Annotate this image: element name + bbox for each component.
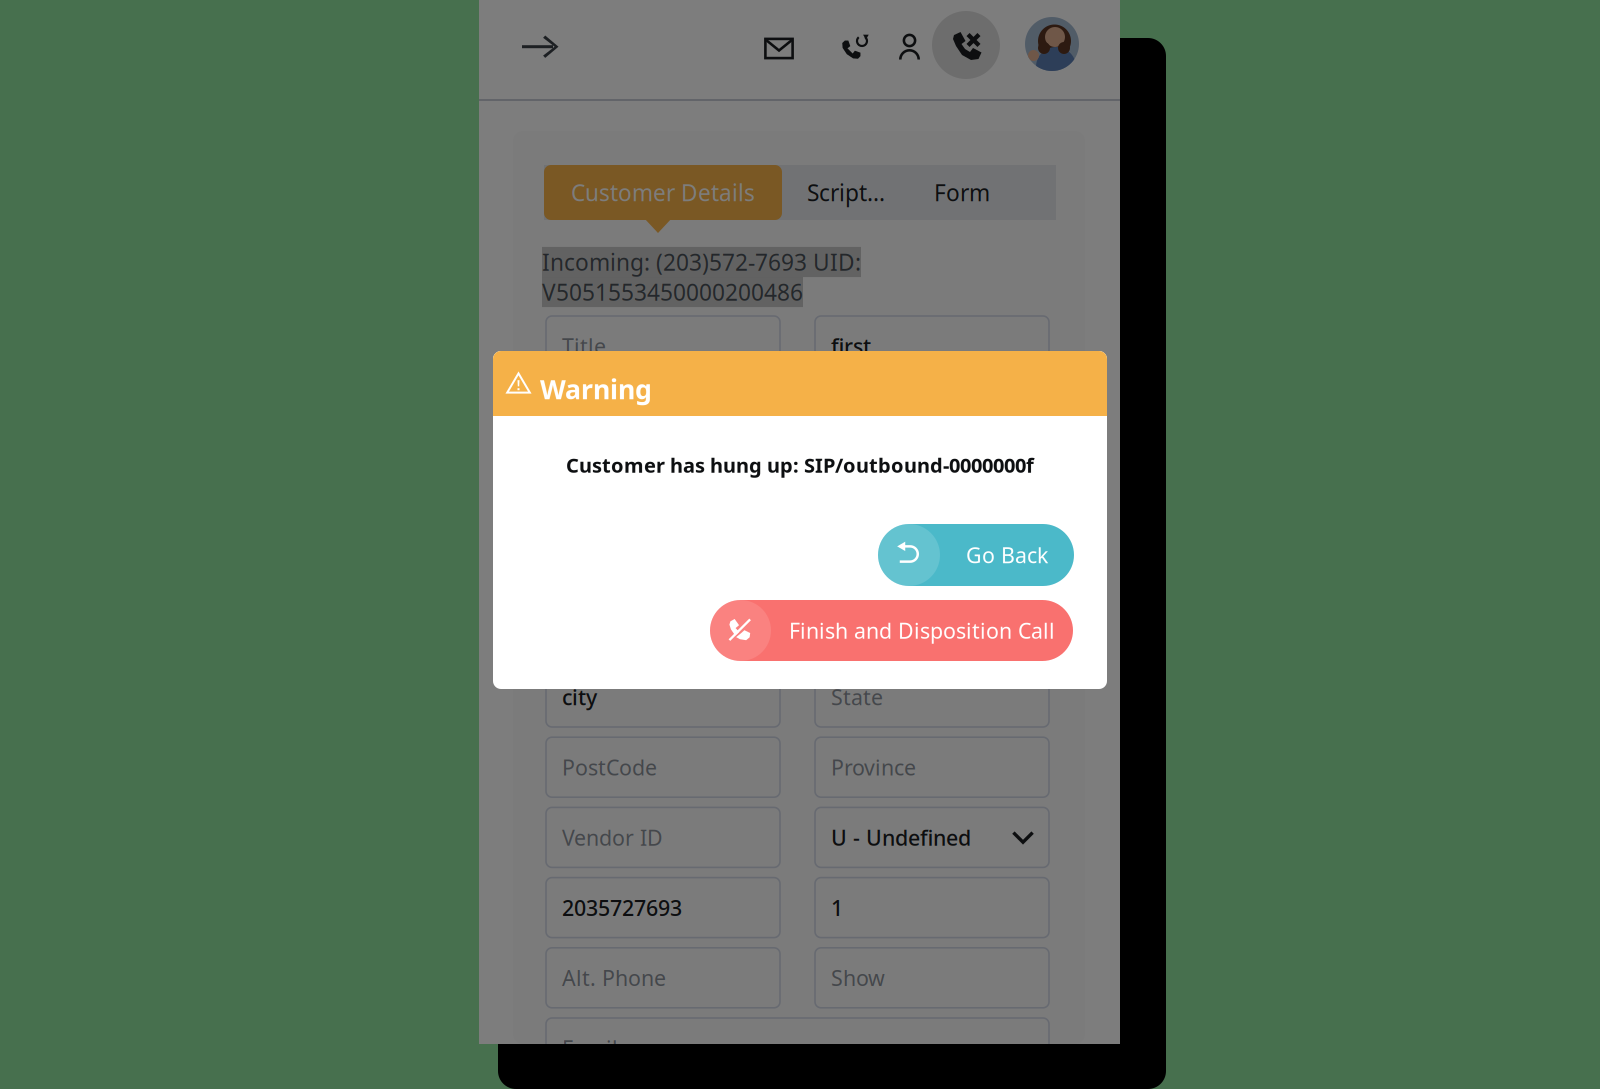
button[interactable]: Customer Details	[544, 165, 782, 220]
staticText: Vendor ID	[562, 823, 663, 851]
staticText: Country	[831, 542, 911, 571]
staticText: Title	[562, 332, 606, 360]
staticText: Incoming: (203)572-7693 UID:	[542, 247, 861, 277]
staticText: Customer Details	[571, 177, 755, 207]
staticText: Address2	[831, 472, 923, 500]
button[interactable]: Contact	[899, 33, 920, 60]
button[interactable]: Profile	[1025, 17, 1079, 71]
staticText: Address1	[562, 472, 654, 500]
staticText: Finish and Disposition Call	[789, 616, 1055, 645]
staticText: Warning	[540, 371, 652, 407]
staticText: 1	[831, 893, 843, 922]
staticText: city	[562, 683, 597, 711]
staticText: Security Phrase	[562, 613, 717, 641]
staticText: U - Undefined	[831, 823, 971, 851]
staticText: Email	[562, 1034, 618, 1062]
staticText: Show	[831, 964, 885, 992]
staticText: Script...	[807, 177, 885, 207]
staticText: first	[831, 332, 871, 360]
staticText: Customer has hung up: SIP/outbound-00000…	[566, 452, 1034, 478]
staticText: PostCode	[562, 753, 657, 781]
staticText: Alt. Phone	[562, 964, 666, 992]
button[interactable]: Go Back	[878, 524, 1074, 586]
button[interactable]: Email	[765, 38, 793, 59]
button[interactable]: Call back	[837, 32, 865, 58]
staticText: Comments	[831, 613, 940, 641]
button[interactable]: Form	[934, 165, 1034, 220]
staticText: Province	[831, 753, 916, 781]
staticText: 2035727693	[562, 893, 682, 922]
staticText: Go Back	[966, 541, 1048, 569]
staticText: middle	[562, 402, 632, 430]
button[interactable]: Finish and Disposition Call	[710, 600, 1073, 661]
button[interactable]: Hang up	[932, 11, 1000, 79]
staticText: Form	[934, 177, 990, 207]
button[interactable]: Script...	[807, 165, 927, 220]
staticText: State	[831, 683, 883, 711]
button[interactable]: Forward	[522, 35, 559, 59]
staticText: last	[831, 402, 867, 430]
staticText: V5051553450000200486	[542, 277, 803, 307]
